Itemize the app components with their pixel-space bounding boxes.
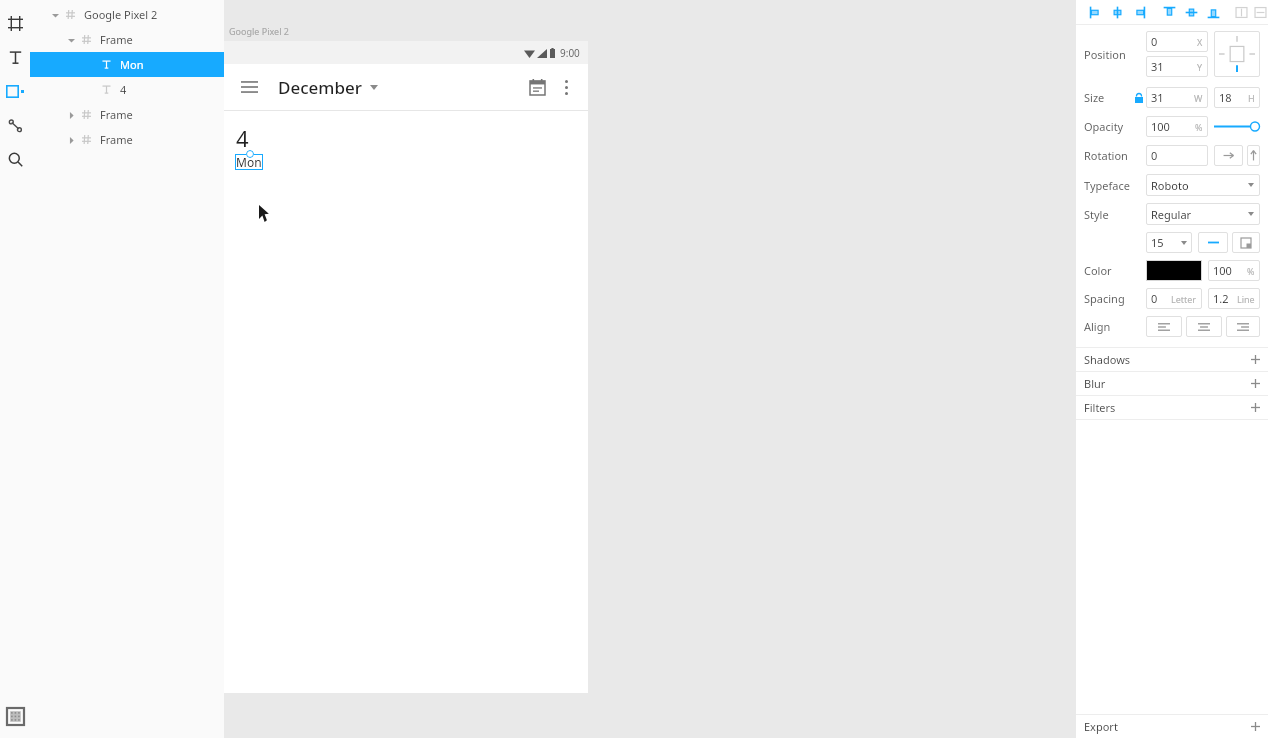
- button[interactable]: Frame: [30, 102, 224, 127]
- staticText: 1.2: [1213, 291, 1229, 306]
- staticText: Typeface: [1084, 178, 1130, 193]
- button[interactable]: Align left: [1084, 1, 1106, 23]
- button[interactable]: 1.2: [1208, 288, 1260, 309]
- button[interactable]: Distribute horizontally: [1230, 1, 1252, 23]
- staticText: 0: [1151, 148, 1158, 163]
- staticText: %: [1195, 121, 1203, 133]
- staticText: H: [1248, 92, 1255, 104]
- button[interactable]: Fill color: [1146, 260, 1202, 281]
- staticText: 4: [120, 82, 127, 97]
- button[interactable]: 100: [1146, 116, 1208, 137]
- button[interactable]: Frame tool: [0, 6, 30, 40]
- staticText: Frame: [100, 107, 133, 122]
- staticText: 100: [1213, 263, 1232, 278]
- staticText: Google Pixel 2: [229, 25, 289, 37]
- button[interactable]: 0: [1146, 145, 1208, 166]
- button[interactable]: Roboto: [1146, 174, 1260, 196]
- button[interactable]: More options: [552, 73, 580, 101]
- button[interactable]: Flip horizontal: [1214, 145, 1243, 166]
- button[interactable]: Regular: [1146, 203, 1260, 225]
- staticText: 9:00: [560, 46, 580, 60]
- button[interactable]: Layout grid: [7, 708, 24, 725]
- staticText: 31: [1151, 90, 1164, 105]
- button[interactable]: Google Pixel 2: [30, 2, 224, 27]
- staticText: X: [1197, 36, 1203, 48]
- button[interactable]: Align text left: [1146, 316, 1182, 337]
- staticText: Roboto: [1151, 178, 1189, 193]
- staticText: Y: [1197, 61, 1203, 73]
- staticText: Filters: [1084, 400, 1116, 415]
- button[interactable]: Filters: [1076, 396, 1268, 419]
- button[interactable]: Mon: [30, 52, 224, 77]
- staticText: Rotation: [1084, 148, 1128, 163]
- button[interactable]: Opacity slider: [1214, 116, 1260, 137]
- button[interactable]: Flip vertical: [1247, 145, 1260, 166]
- staticText: 4: [236, 123, 249, 153]
- button[interactable]: 31: [1146, 56, 1208, 77]
- staticText: Color: [1084, 263, 1112, 278]
- button[interactable]: 0: [1146, 288, 1202, 309]
- button[interactable]: Align text right: [1226, 316, 1260, 337]
- staticText: Opacity: [1084, 119, 1124, 134]
- staticText: Blur: [1084, 376, 1106, 391]
- staticText: Mon: [236, 154, 262, 170]
- button[interactable]: Align right: [1128, 1, 1150, 23]
- staticText: %: [1247, 265, 1255, 277]
- button[interactable]: Shadows: [1076, 348, 1268, 371]
- button[interactable]: Pen tool: [0, 108, 30, 142]
- button[interactable]: Zoom tool: [0, 142, 30, 176]
- staticText: Style: [1084, 207, 1109, 222]
- staticText: 0: [1151, 291, 1158, 306]
- staticText: Export: [1084, 719, 1118, 734]
- button[interactable]: Align text center: [1186, 316, 1222, 337]
- staticText: Position: [1084, 47, 1126, 62]
- button[interactable]: Frame: [30, 27, 224, 52]
- staticText: 100: [1151, 119, 1170, 134]
- staticText: Mon: [120, 57, 144, 72]
- staticText: W: [1194, 92, 1203, 104]
- button[interactable]: Align horizontal center: [1106, 1, 1128, 23]
- button[interactable]: Frame: [30, 127, 224, 152]
- button[interactable]: 18: [1214, 87, 1260, 108]
- staticText: Spacing: [1084, 291, 1125, 306]
- button[interactable]: Open navigation drawer: [236, 74, 262, 100]
- button[interactable]: Export: [1076, 715, 1268, 738]
- button[interactable]: Auto width: [1198, 232, 1228, 253]
- staticText: Line: [1237, 293, 1255, 305]
- staticText: Frame: [100, 32, 133, 47]
- staticText: Align: [1084, 319, 1111, 334]
- button[interactable]: Fixed size: [1232, 232, 1260, 253]
- button[interactable]: Text tool: [0, 40, 30, 74]
- staticText: Letter: [1171, 293, 1197, 305]
- staticText: 18: [1219, 90, 1232, 105]
- button[interactable]: Mon: [236, 154, 262, 170]
- button[interactable]: December: [278, 76, 378, 99]
- staticText: 0: [1151, 34, 1158, 49]
- button[interactable]: 100: [1208, 260, 1260, 281]
- button[interactable]: 4: [30, 77, 224, 102]
- button[interactable]: Constraints: [1214, 31, 1260, 77]
- button[interactable]: 0: [1146, 31, 1208, 52]
- staticText: 31: [1151, 59, 1164, 74]
- staticText: Size: [1084, 90, 1105, 105]
- button[interactable]: Distribute vertically: [1252, 1, 1268, 23]
- button[interactable]: 31: [1146, 87, 1208, 108]
- button[interactable]: Blur: [1076, 372, 1268, 395]
- button[interactable]: 15: [1146, 232, 1192, 253]
- staticText: Shadows: [1084, 352, 1131, 367]
- button[interactable]: Shape tool: [0, 74, 30, 108]
- staticText: December: [278, 76, 362, 99]
- button[interactable]: Align vertical center: [1180, 1, 1202, 23]
- button[interactable]: Calendar view: [522, 72, 552, 102]
- staticText: Regular: [1151, 207, 1192, 222]
- button[interactable]: Align top: [1158, 1, 1180, 23]
- button[interactable]: Align bottom: [1202, 1, 1224, 23]
- staticText: Google Pixel 2: [84, 7, 158, 22]
- staticText: 15: [1151, 235, 1164, 250]
- staticText: Frame: [100, 132, 133, 147]
